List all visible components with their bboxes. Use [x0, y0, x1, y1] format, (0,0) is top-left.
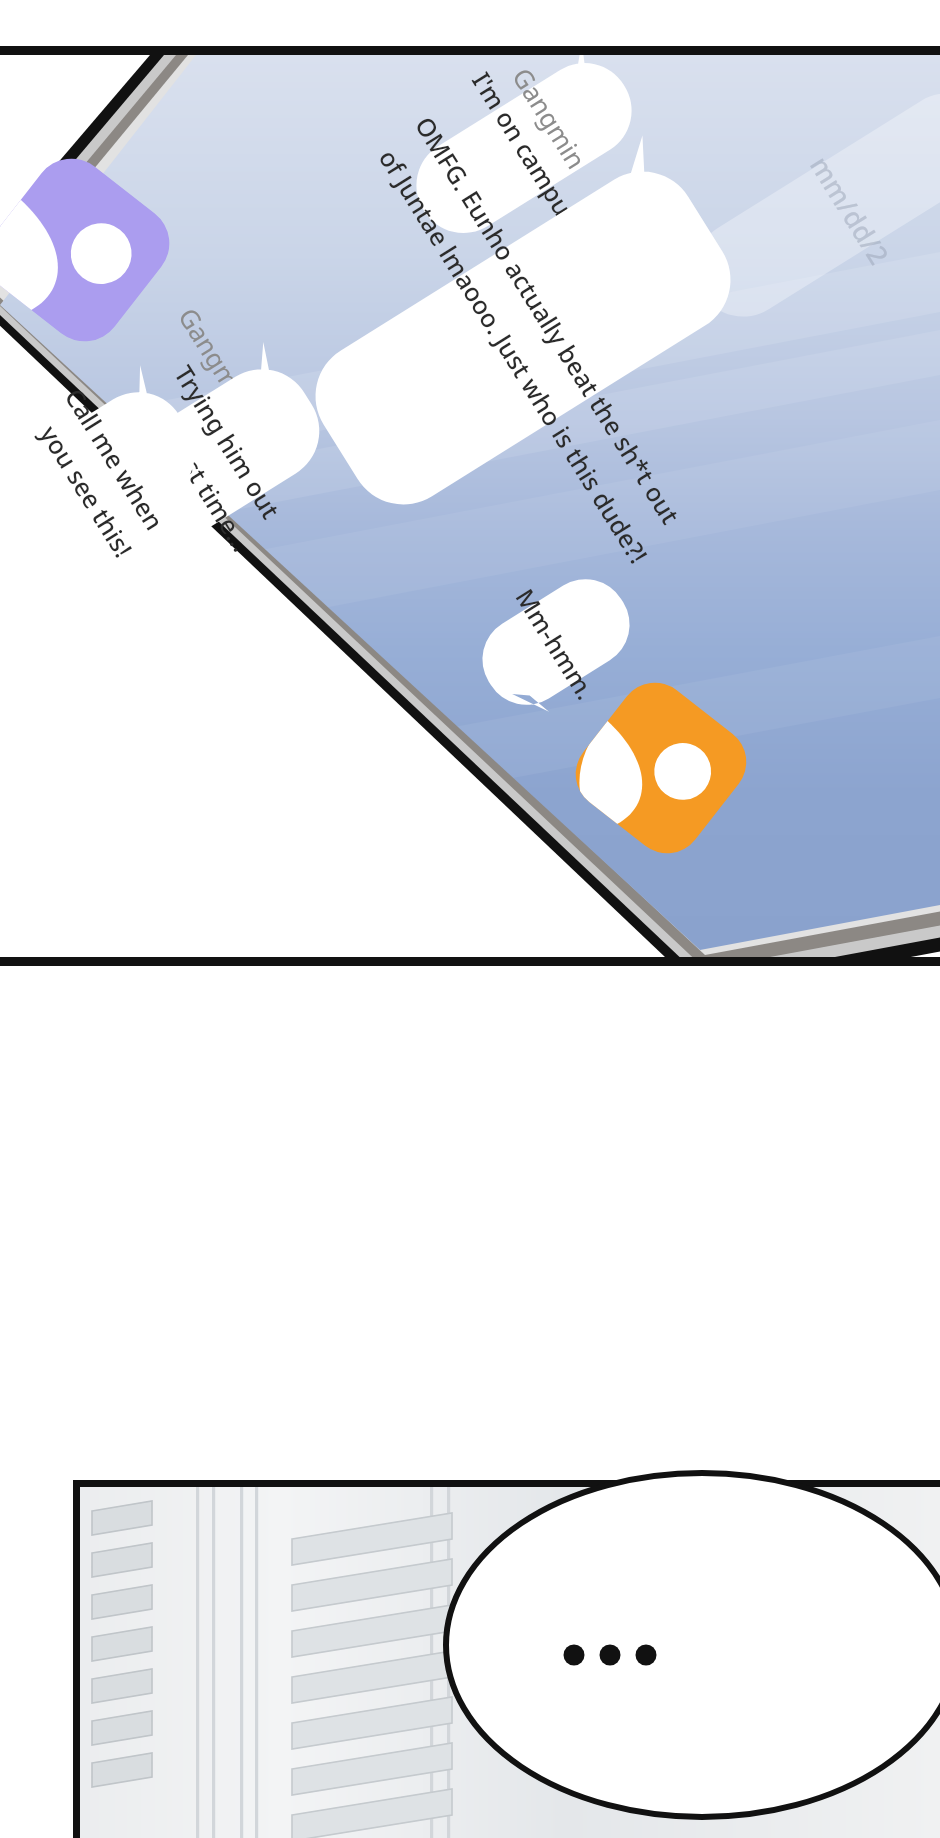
button[interactable]: Webtoon panel: phone chat — [0, 0, 940, 1838]
